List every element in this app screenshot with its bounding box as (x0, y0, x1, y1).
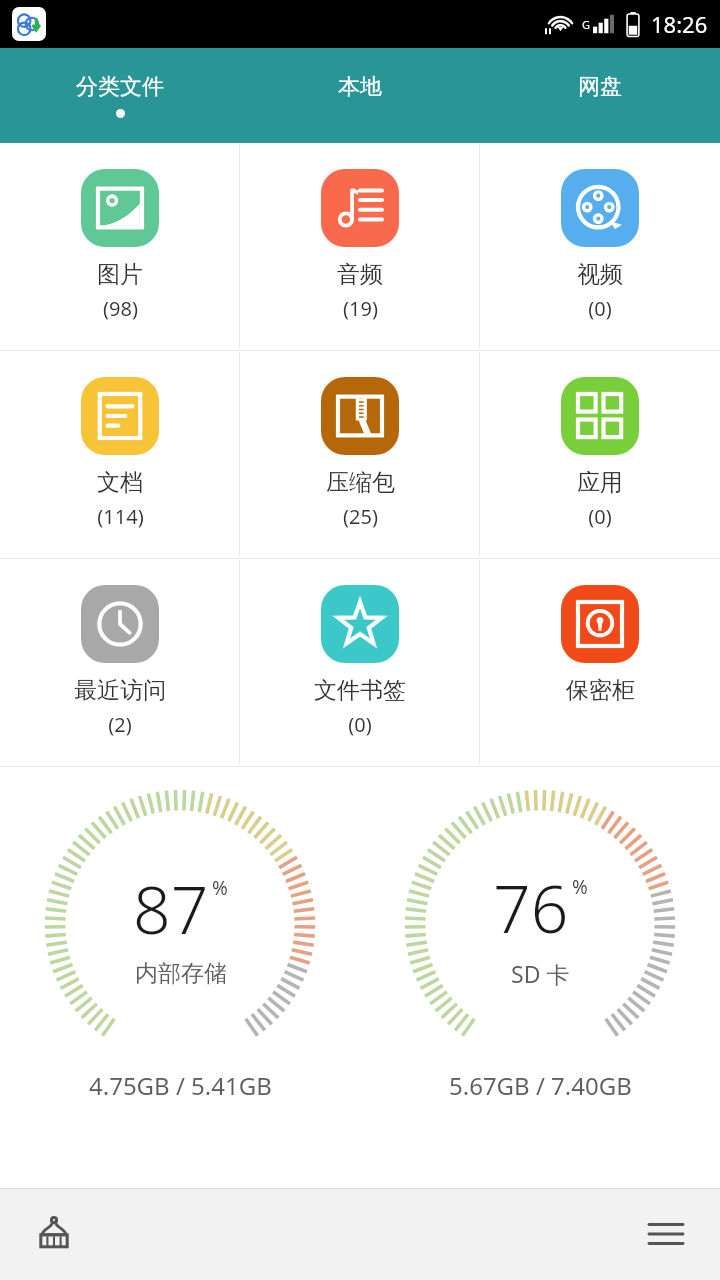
staticText: (98) (103, 295, 138, 322)
staticText: 87 (133, 863, 209, 953)
button[interactable]: Clean (18, 1198, 90, 1270)
staticText: 本地 (338, 73, 382, 101)
staticText: 5.67GB / 7.40GB (449, 1069, 632, 1102)
staticText: 网盘 (578, 73, 622, 101)
button[interactable]: 音频 (240, 143, 480, 350)
staticText: 文件书签 (314, 676, 406, 705)
button[interactable]: 视频 (480, 143, 720, 350)
button[interactable]: 本地 (240, 48, 480, 143)
staticText: 图片 (97, 260, 143, 289)
button[interactable]: 应用 (480, 351, 720, 558)
button[interactable]: 分类文件 (0, 48, 240, 143)
staticText: SD 卡 (511, 958, 570, 989)
button[interactable]: 文件书签 (240, 559, 480, 766)
staticText: (0) (588, 295, 612, 322)
staticText: G (582, 17, 591, 32)
button[interactable]: 保密柜 (480, 559, 720, 766)
staticText: 视频 (577, 260, 623, 289)
button[interactable]: 网盘 (480, 48, 720, 143)
staticText: (2) (108, 711, 132, 738)
staticText: 18:26 (651, 9, 708, 39)
staticText: (0) (588, 503, 612, 530)
staticText: 压缩包 (326, 468, 395, 497)
staticText: 最近访问 (74, 676, 166, 705)
staticText: (19) (343, 295, 378, 322)
staticText: (25) (343, 503, 378, 530)
staticText: (114) (97, 503, 144, 530)
staticText: % (572, 874, 588, 900)
staticText: 应用 (577, 468, 623, 497)
button[interactable]: 最近访问 (0, 559, 240, 766)
button[interactable]: 压缩包 (240, 351, 480, 558)
staticText: 内部存储 (135, 959, 227, 988)
button[interactable]: Menu (630, 1198, 702, 1270)
staticText: 保密柜 (566, 676, 635, 705)
staticText: 76 (493, 862, 569, 952)
staticText: 分类文件 (76, 73, 164, 101)
button[interactable]: 文档 (0, 351, 240, 558)
staticText: 4.75GB / 5.41GB (89, 1069, 272, 1102)
button[interactable]: 图片 (0, 143, 240, 350)
staticText: % (212, 875, 228, 901)
staticText: (0) (348, 711, 372, 738)
staticText: 文档 (97, 468, 143, 497)
staticText: 音频 (337, 260, 383, 289)
